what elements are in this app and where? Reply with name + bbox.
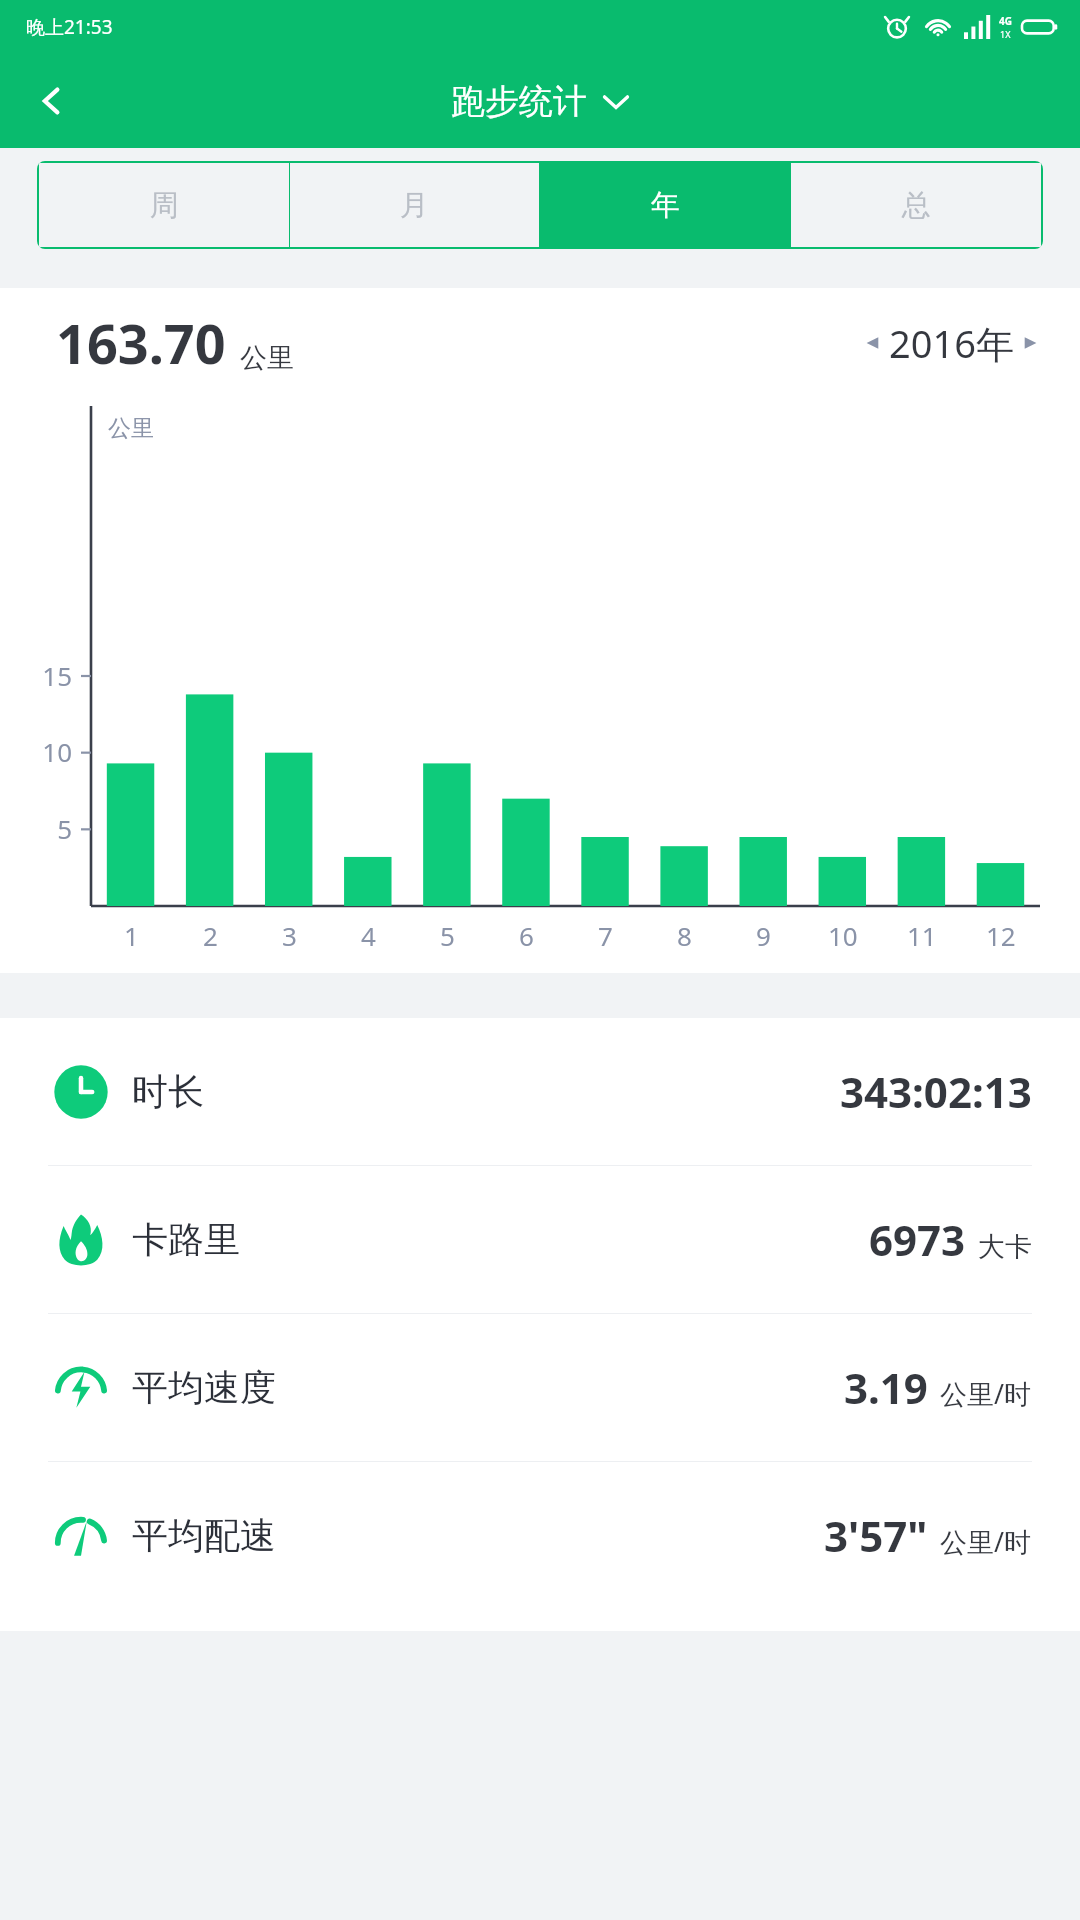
- staticText: 平均配速: [132, 1513, 276, 1558]
- staticText: 2: [203, 918, 218, 953]
- staticText: 月: [400, 187, 429, 224]
- staticText: 9: [756, 918, 771, 953]
- staticText: 公里/时: [940, 1523, 1032, 1560]
- staticText: 8: [677, 918, 692, 953]
- staticText: 3.19: [844, 1359, 928, 1416]
- staticText: 7: [598, 918, 613, 953]
- staticText: 跑步统计: [451, 80, 587, 123]
- staticText: 10: [10, 734, 72, 769]
- staticText: 5: [10, 811, 72, 846]
- button[interactable]: 周: [39, 163, 289, 247]
- staticText: 163.70: [56, 306, 226, 380]
- staticText: 3: [282, 918, 297, 953]
- staticText: 年: [651, 187, 680, 224]
- staticText: 6: [519, 918, 534, 953]
- staticText: 3'57": [824, 1507, 928, 1564]
- staticText: 大卡: [978, 1230, 1032, 1264]
- staticText: 10: [828, 918, 858, 953]
- staticText: 平均速度: [132, 1365, 276, 1410]
- staticText: 5: [440, 918, 455, 953]
- staticText: 时长: [132, 1069, 204, 1114]
- staticText: 6973: [869, 1211, 966, 1268]
- button[interactable]: 返回: [14, 63, 90, 139]
- staticText: 2016年: [889, 317, 1014, 369]
- staticText: 4: [361, 918, 376, 953]
- button[interactable]: 年: [540, 163, 790, 247]
- staticText: 晚上21:53: [26, 14, 113, 40]
- button[interactable]: 跑步统计: [451, 80, 629, 123]
- button[interactable]: 卡路里: [0, 1166, 1080, 1313]
- staticText: 12: [986, 918, 1016, 953]
- staticText: 周: [150, 187, 179, 224]
- button[interactable]: 2016年: [863, 317, 1040, 369]
- staticText: 公里: [240, 341, 294, 375]
- staticText: 1: [124, 918, 139, 953]
- staticText: 总: [902, 187, 931, 224]
- staticText: 15: [10, 658, 72, 693]
- button[interactable]: 总: [791, 163, 1041, 247]
- button[interactable]: 平均配速: [0, 1462, 1080, 1609]
- staticText: 公里/时: [940, 1375, 1032, 1412]
- staticText: 11: [907, 918, 937, 953]
- staticText: 公里: [108, 414, 154, 443]
- staticText: 卡路里: [132, 1217, 240, 1262]
- button[interactable]: 时长: [0, 1018, 1080, 1165]
- button[interactable]: 月: [290, 163, 539, 247]
- staticText: 4G: [999, 14, 1012, 28]
- staticText: 343:02:13: [840, 1063, 1032, 1120]
- staticText: 1X: [1000, 28, 1011, 40]
- button[interactable]: 平均速度: [0, 1314, 1080, 1461]
